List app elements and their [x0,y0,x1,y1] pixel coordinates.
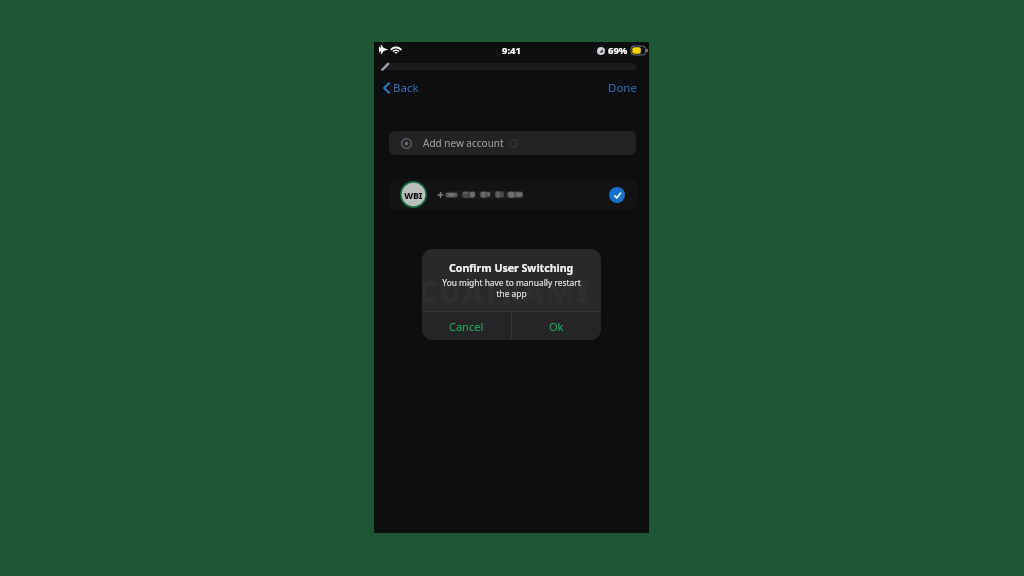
button[interactable]: Edit [380,61,391,72]
staticText: Add new account [423,136,504,150]
staticText: Cancel [449,319,484,334]
button[interactable]: Address bar [384,63,636,70]
staticText: Confirm User Switching [449,261,574,275]
staticText: Done [608,80,637,96]
button[interactable]: Back [380,77,422,99]
button[interactable]: Selected account [609,187,625,203]
staticText: 9:41 [502,44,521,57]
staticText: 69% [608,44,628,57]
staticText: CUATRAMIO [422,271,597,311]
button[interactable]: Cancel [422,312,511,340]
button[interactable]: Add new account [389,131,636,155]
staticText: You might have to manually restart the a… [442,277,581,299]
staticText: Ok [549,319,564,334]
button[interactable]: WBI [389,179,637,210]
button[interactable]: Done [605,77,640,99]
staticText: WBI [404,189,423,201]
staticText: Back [393,80,419,96]
button[interactable]: Ok [512,312,601,340]
